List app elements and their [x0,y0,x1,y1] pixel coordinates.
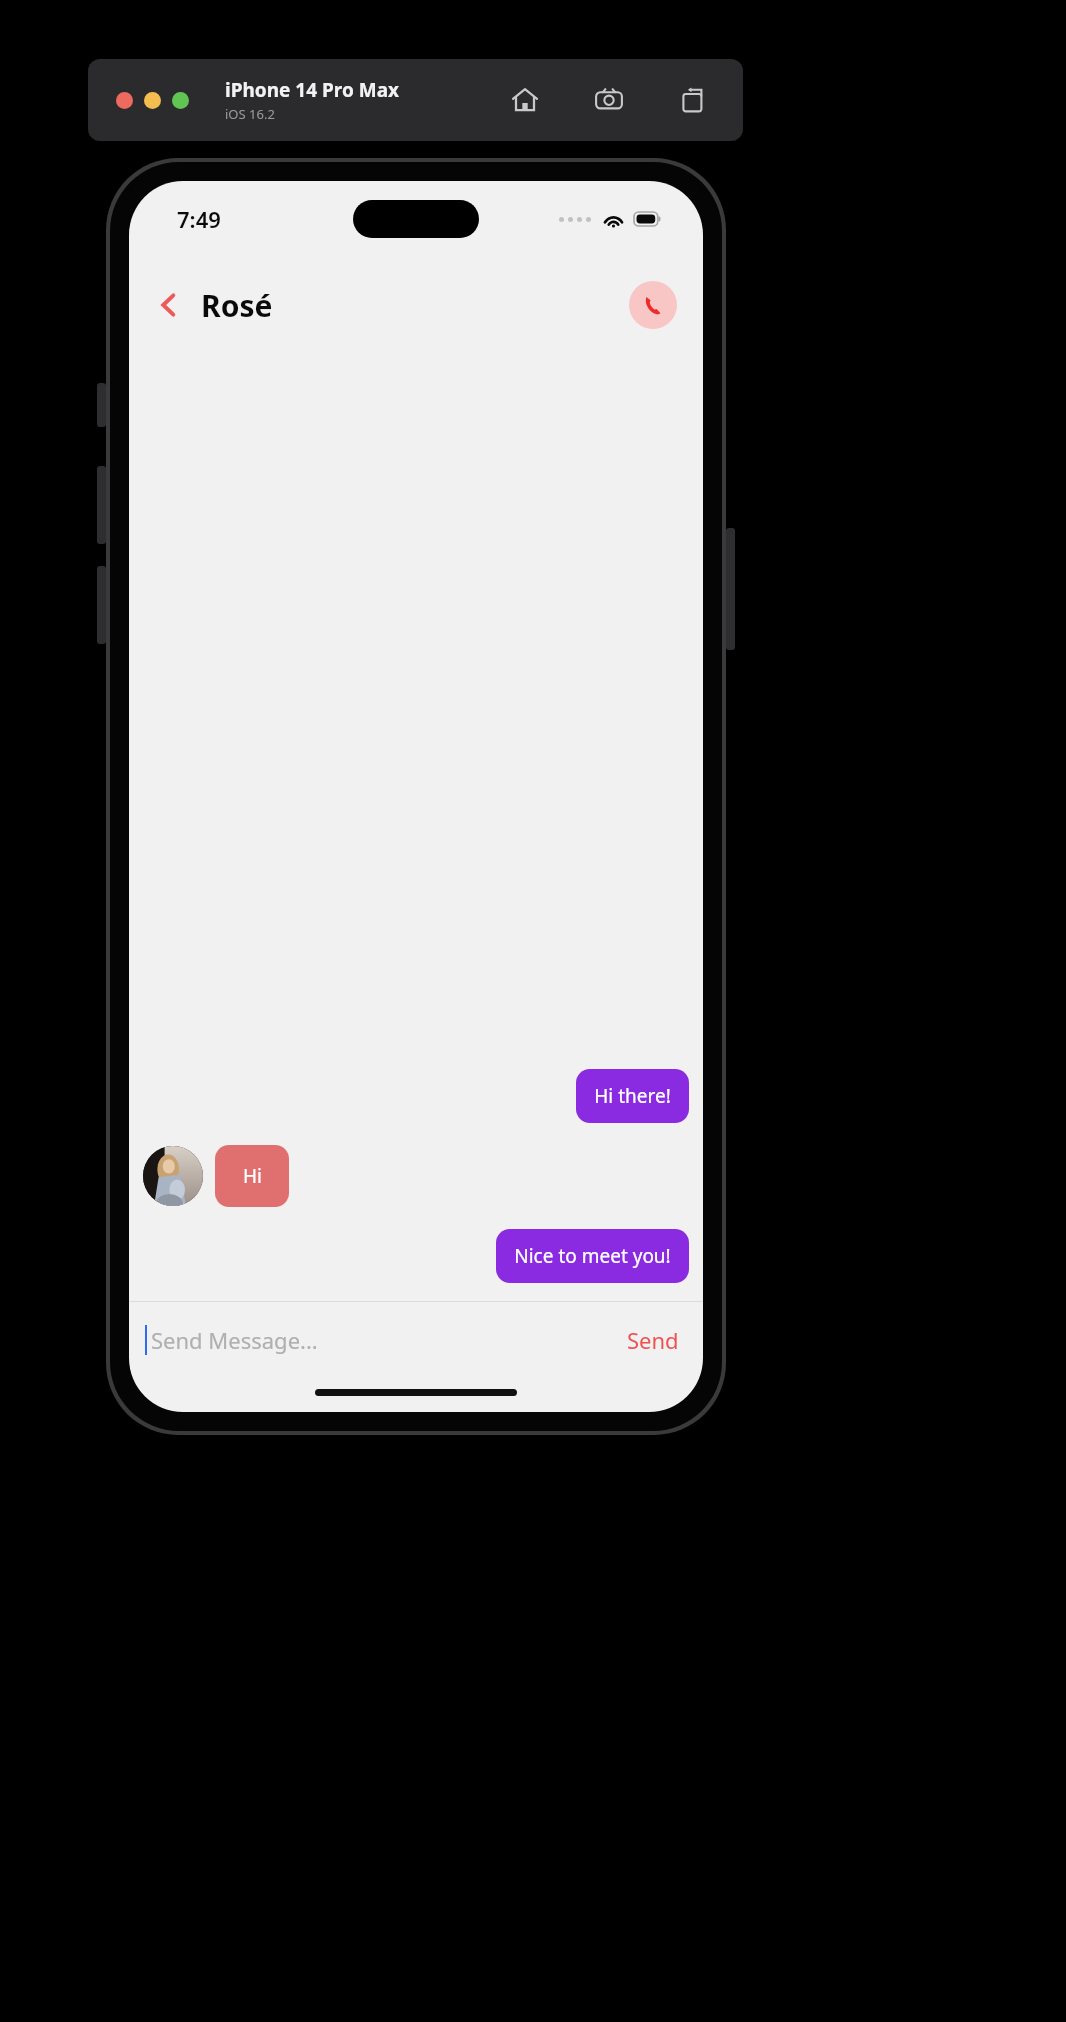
button[interactable]: Hi [215,1145,289,1207]
button[interactable] [116,92,133,109]
staticText: Nice to meet you! [514,1243,671,1269]
staticText: Hi [243,1163,262,1189]
staticText: iPhone 14 Pro Max [225,77,400,103]
button[interactable]: Send Message... [145,1325,318,1355]
button[interactable] [144,92,161,109]
staticText: Send [627,1325,679,1355]
button[interactable]: Hi there! [576,1069,689,1123]
button[interactable]: Screenshot [589,80,629,120]
button[interactable] [172,92,189,109]
staticText: Send Message... [151,1325,318,1355]
button[interactable]: Call [629,281,677,329]
button[interactable]: Rotate [673,80,713,120]
button[interactable]: Back [147,283,191,327]
button[interactable]: Home [505,80,545,120]
staticText: Rosé [201,285,273,326]
staticText: Hi there! [594,1083,671,1109]
staticText: 7:49 [177,204,221,234]
staticText: iOS 16.2 [225,105,275,123]
button[interactable]: Nice to meet you! [496,1229,689,1283]
button[interactable]: Send [621,1319,685,1361]
button[interactable]: Rosé avatar [143,1146,203,1206]
